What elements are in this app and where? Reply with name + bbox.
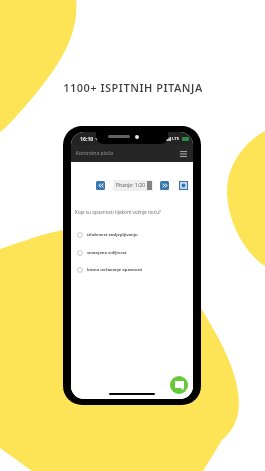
staticText: Koje su opasnosti tijekom vožnje noću? <box>75 209 161 215</box>
button[interactable]: smanjena vidljivost <box>77 250 193 256</box>
button[interactable]: kasno uočavanje opasnosti <box>77 267 193 273</box>
staticText: LTE <box>172 136 180 142</box>
staticText: smanjena vidljivost <box>87 250 127 256</box>
button[interactable]: Previous <box>96 181 105 190</box>
button[interactable]: Overview <box>179 181 188 190</box>
button[interactable]: Menu <box>178 149 188 159</box>
button[interactable]: Next <box>160 181 169 190</box>
staticText: kasno uočavanje opasnosti <box>87 267 143 273</box>
staticText: izloženost zasljepljivanju <box>87 232 138 238</box>
button[interactable]: Chat <box>170 376 188 394</box>
button[interactable]: Pitanje: 1/20 <box>113 180 153 191</box>
staticText: 16:10 <box>80 135 94 142</box>
staticText: Pitanje: 1/20 <box>116 182 146 189</box>
staticText: Kontrolna ploča <box>76 150 114 157</box>
button[interactable]: izloženost zasljepljivanju <box>77 232 193 238</box>
staticText: 1100+ ISPITNIH PITANJA <box>63 80 203 95</box>
